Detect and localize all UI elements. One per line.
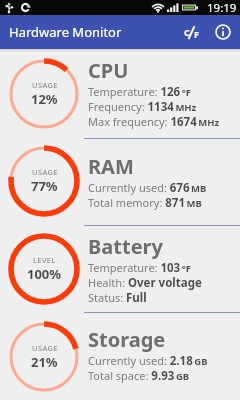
staticText: USAGE [32, 343, 58, 353]
button[interactable]: USAGE [0, 139, 240, 225]
staticText: Total memory: 871 MB [88, 195, 202, 210]
staticText: Health: Over voltage [88, 275, 202, 290]
staticText: Total space: 9.93 GB [88, 368, 190, 383]
staticText: USAGE [32, 167, 58, 177]
staticText: LEVEL [33, 255, 56, 265]
staticText: Temperature: 103 °F [88, 260, 191, 275]
button[interactable]: About [206, 15, 240, 49]
staticText: Temperature: 126 °F [88, 84, 191, 99]
staticText: 12% [31, 90, 58, 108]
staticText: F [194, 28, 199, 40]
staticText: USAGE [32, 80, 58, 90]
staticText: 21% [31, 353, 58, 371]
staticText: Status: Full [88, 290, 147, 305]
staticText: 77% [31, 177, 58, 195]
button[interactable]: LEVEL [0, 226, 240, 312]
button[interactable]: USAGE [0, 313, 240, 400]
staticText: CPU [88, 57, 129, 84]
staticText: Currently used: 676 MB [88, 180, 207, 195]
staticText: 19:19 [207, 0, 237, 15]
staticText: Max frequency: 1674 MHz [88, 114, 220, 129]
button[interactable]: Toggle Celsius Fahrenheit [176, 17, 206, 47]
staticText: Battery [88, 233, 163, 260]
staticText: C [184, 26, 190, 38]
staticText: Storage [88, 326, 166, 353]
staticText: Currently used: 2.18 GB [88, 353, 208, 368]
staticText: Hardware Monitor [9, 23, 122, 41]
button[interactable]: USAGE [0, 49, 240, 138]
staticText: RAM [88, 153, 134, 180]
staticText: 100% [27, 265, 62, 283]
staticText: Frequency: 1134 MHz [88, 99, 197, 114]
